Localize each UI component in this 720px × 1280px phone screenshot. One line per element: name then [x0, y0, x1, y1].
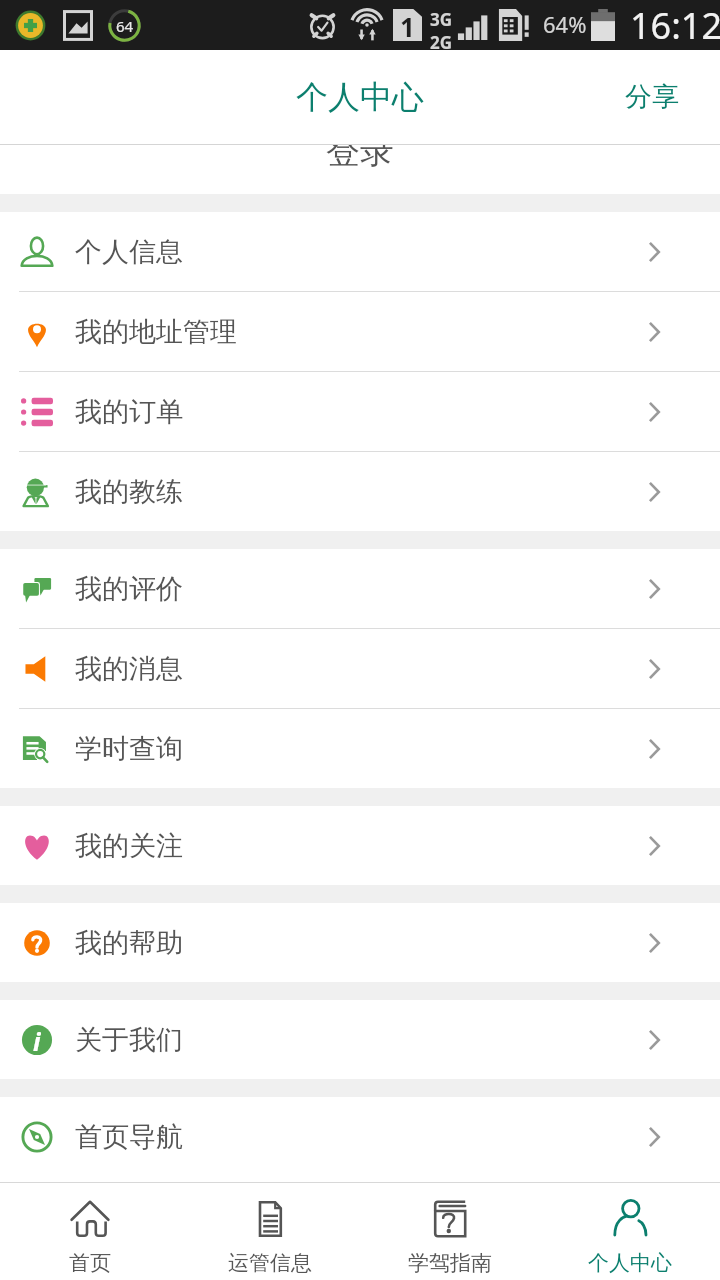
staticText: 个人信息: [75, 235, 183, 269]
other: Alarm set: [307, 9, 338, 40]
button[interactable]: 我的关注: [0, 806, 720, 885]
staticText: 我的评价: [75, 572, 183, 606]
other: Security app notification: [15, 10, 46, 41]
button[interactable]: 我的教练: [0, 452, 720, 531]
staticText: i: [33, 1024, 41, 1056]
staticText: 个人中心: [296, 77, 424, 117]
staticText: 分享: [625, 80, 679, 114]
staticText: 首页导航: [75, 1120, 183, 1154]
button[interactable]: 个人信息: [0, 212, 720, 291]
other: Wi-Fi: [351, 9, 383, 41]
staticText: 1: [400, 9, 415, 41]
button[interactable]: 个人中心: [540, 1183, 720, 1280]
button[interactable]: 学时查询: [0, 709, 720, 788]
staticText: 2G: [430, 31, 453, 54]
button[interactable]: 我的评价: [0, 549, 720, 628]
staticText: 学时查询: [75, 732, 183, 766]
button[interactable]: 分享: [584, 64, 720, 130]
staticText: 64%: [543, 9, 587, 39]
staticText: 我的教练: [75, 475, 183, 509]
staticText: 个人中心: [588, 1250, 672, 1276]
staticText: 学驾指南: [408, 1250, 492, 1276]
button[interactable]: 我的帮助: [0, 903, 720, 982]
button[interactable]: 首页导航: [0, 1097, 720, 1176]
button[interactable]: 登录: [0, 145, 720, 194]
staticText: 登录: [326, 145, 394, 173]
button[interactable]: 首页: [0, 1183, 180, 1280]
button[interactable]: 学驾指南: [360, 1183, 540, 1280]
button[interactable]: 我的消息: [0, 629, 720, 708]
button[interactable]: 我的地址管理: [0, 292, 720, 371]
button[interactable]: i: [0, 1000, 720, 1079]
button[interactable]: 运管信息: [180, 1183, 360, 1280]
staticText: 运管信息: [228, 1250, 312, 1276]
staticText: 我的地址管理: [75, 315, 237, 349]
button[interactable]: 我的订单: [0, 372, 720, 451]
staticText: 我的帮助: [75, 926, 183, 960]
staticText: 我的关注: [75, 829, 183, 863]
staticText: 64: [116, 16, 134, 36]
staticText: 16:12: [630, 1, 720, 50]
staticText: 3G: [430, 8, 453, 31]
other: Gallery notification: [63, 11, 93, 40]
staticText: 我的订单: [75, 395, 183, 429]
staticText: 首页: [69, 1250, 111, 1276]
staticText: 关于我们: [75, 1023, 183, 1057]
staticText: 我的消息: [75, 652, 183, 686]
